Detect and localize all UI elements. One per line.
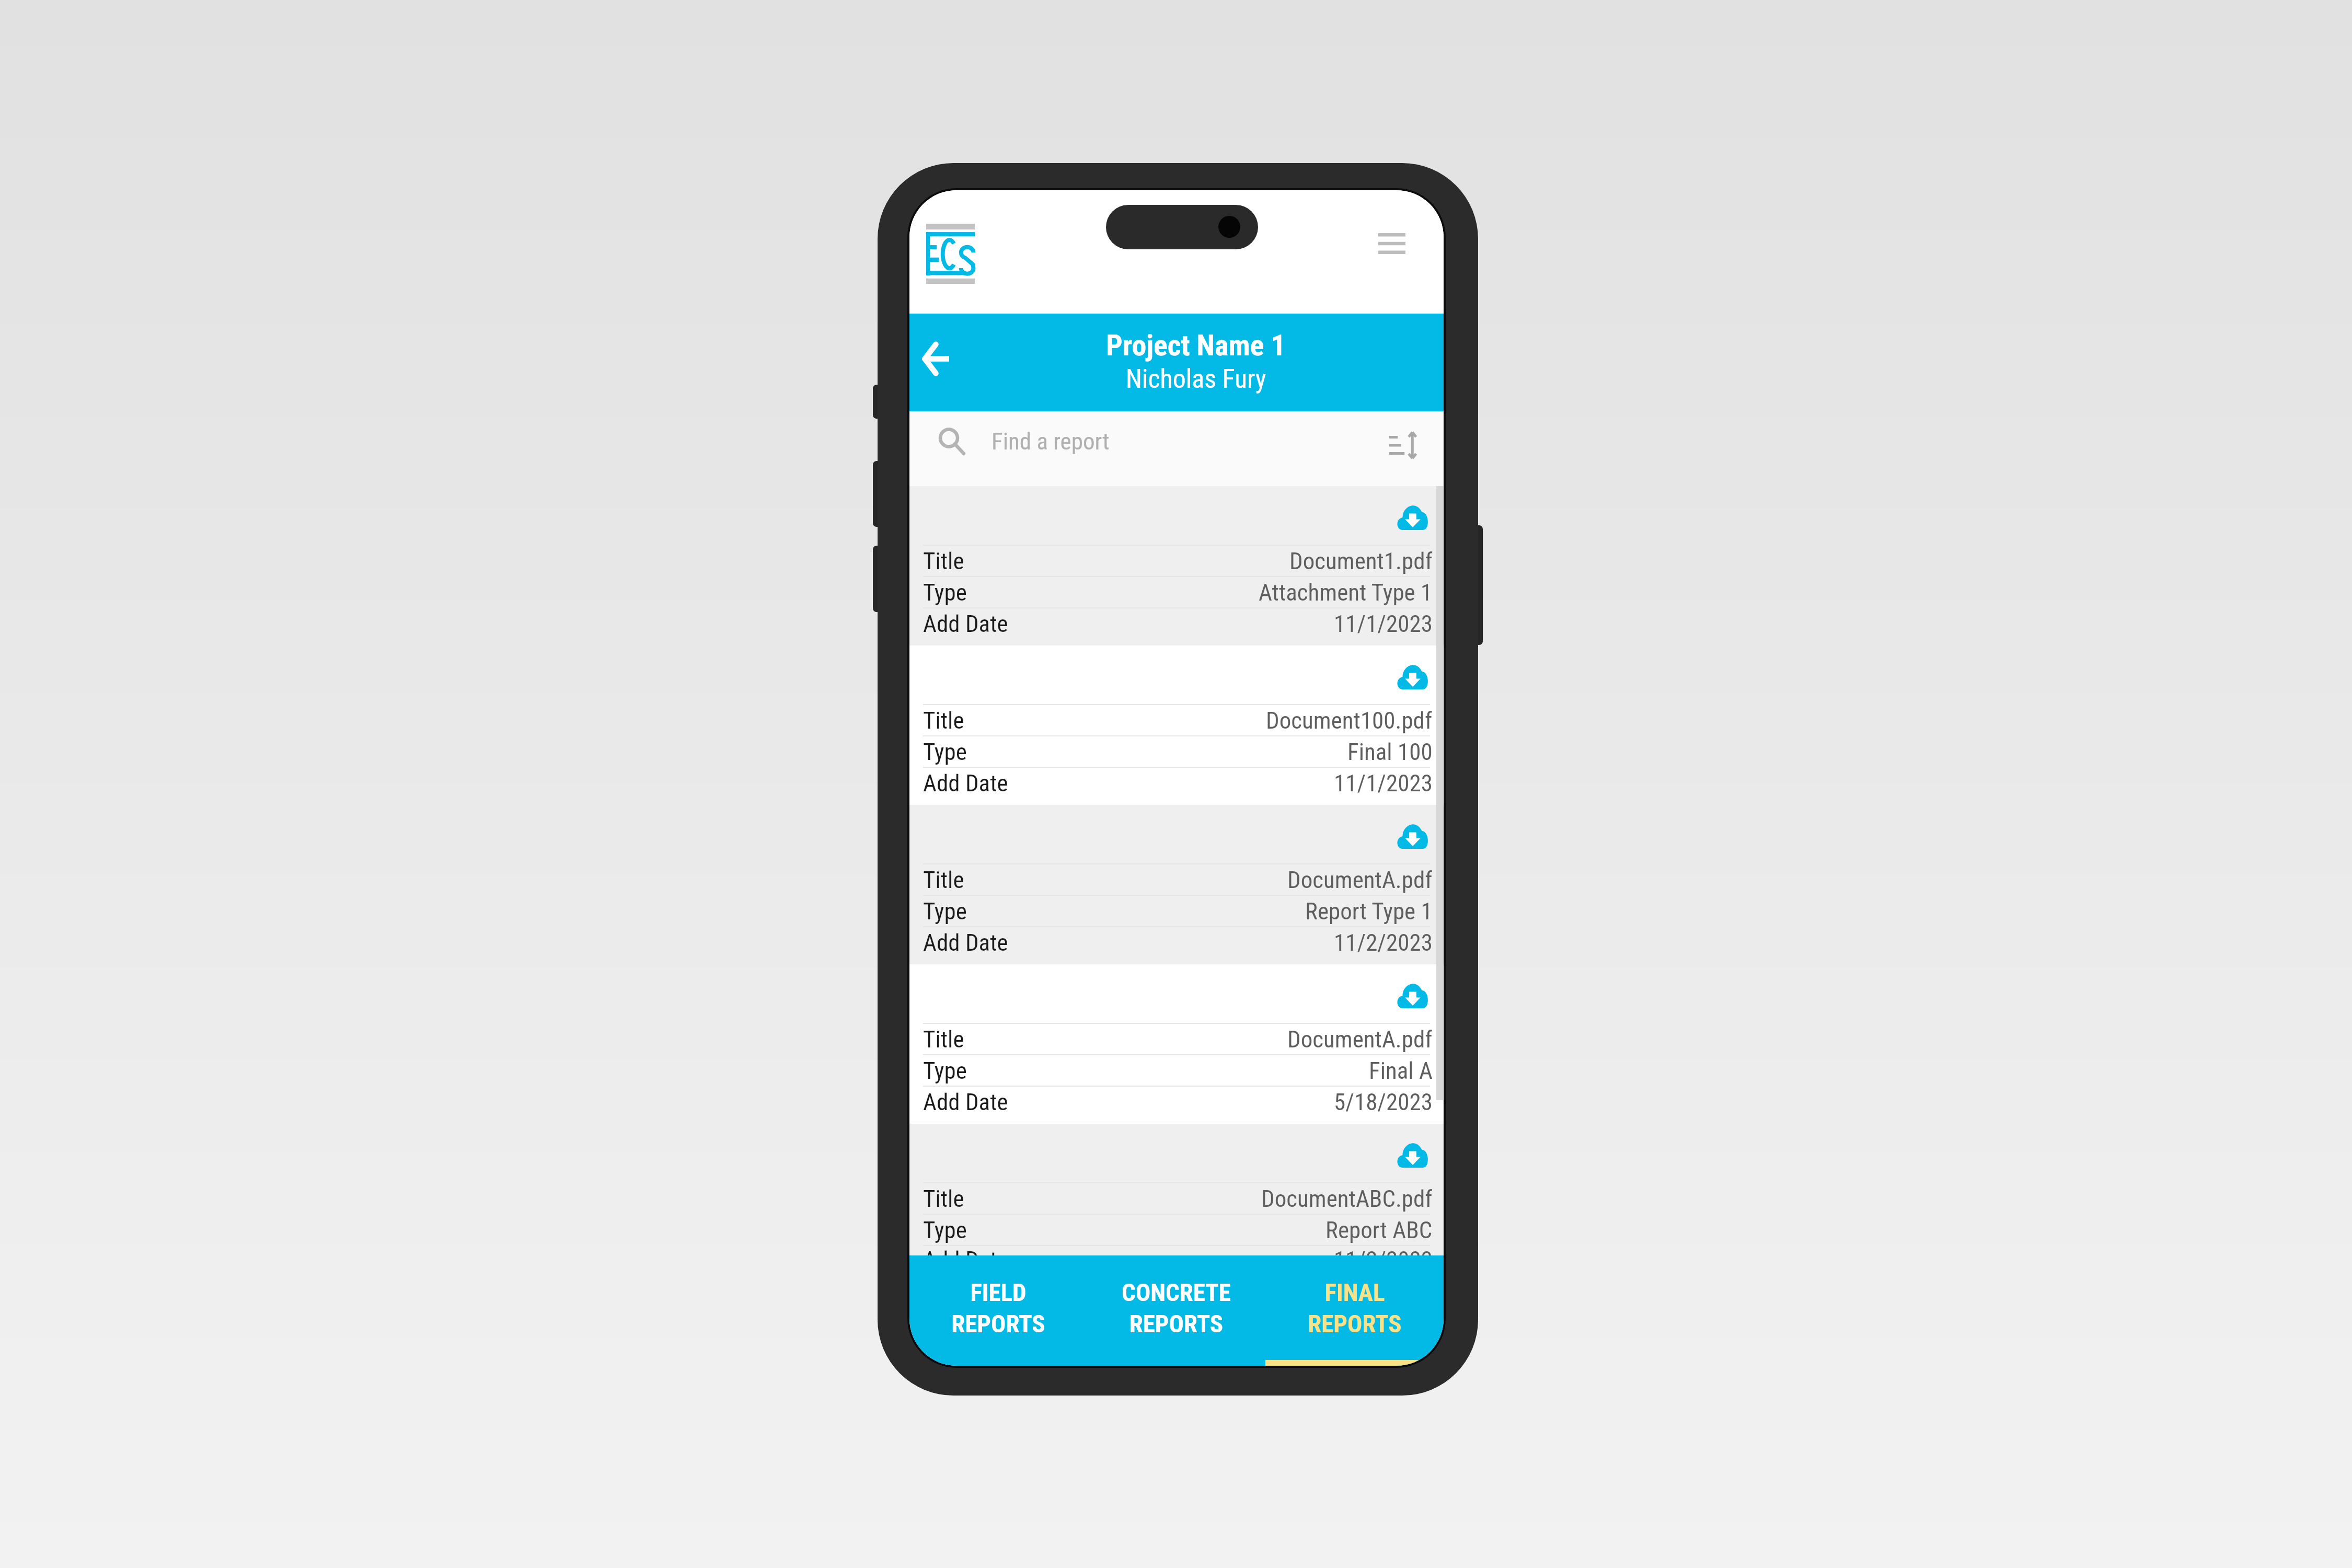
staticText: Title: [923, 1025, 964, 1053]
button[interactable]: Back: [909, 330, 962, 388]
staticText: Type: [923, 1216, 967, 1244]
button[interactable]: Download: [909, 805, 1444, 964]
staticText: Report Type 1: [1305, 897, 1433, 925]
staticText: Type: [923, 897, 967, 925]
button[interactable]: Download: [909, 486, 1444, 645]
staticText: Final A: [1369, 1057, 1433, 1085]
staticText: CONCRETE REPORTS: [1122, 1278, 1231, 1338]
staticText: Add Date: [923, 769, 1008, 797]
staticText: Title: [923, 1185, 964, 1213]
staticText: Project Name 1: [1106, 328, 1286, 363]
staticText: Add Date: [923, 1246, 1008, 1255]
staticText: DocumentA.pdf: [1287, 1025, 1433, 1053]
staticText: 5/18/2023: [1334, 1088, 1433, 1116]
staticText: Nicholas Fury: [1126, 364, 1266, 395]
staticText: Document100.pdf: [1266, 707, 1433, 734]
staticText: Attachment Type 1: [1259, 579, 1433, 606]
button[interactable]: Download: [1389, 497, 1436, 536]
staticText: Title: [923, 547, 964, 575]
staticText: 11/2/2023: [1334, 929, 1433, 956]
button[interactable]: Download: [909, 645, 1444, 805]
staticText: FINAL REPORTS: [1308, 1278, 1402, 1338]
staticText: 11/1/2023: [1334, 769, 1433, 797]
button[interactable]: Download: [1389, 815, 1436, 855]
staticText: Type: [923, 738, 967, 766]
button[interactable]: Download: [1389, 975, 1436, 1014]
staticText: Add Date: [923, 929, 1008, 956]
button[interactable]: Download: [909, 1124, 1444, 1255]
staticText: Add Date: [923, 1088, 1008, 1116]
staticText: Add Date: [923, 610, 1008, 638]
staticText: Type: [923, 1057, 967, 1085]
button[interactable]: Download: [1389, 1134, 1436, 1174]
staticText: 11/2/2023: [1334, 1246, 1433, 1255]
staticText: DocumentABC.pdf: [1261, 1185, 1433, 1213]
staticText: Final 100: [1347, 738, 1433, 766]
staticText: Report ABC: [1325, 1216, 1433, 1244]
staticText: Find a report: [991, 428, 1110, 455]
staticText: Type: [923, 579, 967, 606]
staticText: 11/1/2023: [1334, 610, 1433, 638]
button[interactable]: CONCRETE REPORTS: [1087, 1255, 1265, 1366]
staticText: Title: [923, 707, 964, 734]
button[interactable]: FINAL REPORTS: [1265, 1255, 1444, 1366]
button[interactable]: FIELD REPORTS: [909, 1255, 1087, 1366]
button[interactable]: Download: [1389, 656, 1436, 696]
staticText: FIELD REPORTS: [951, 1278, 1045, 1338]
button[interactable]: Download: [909, 964, 1444, 1124]
staticText: DocumentA.pdf: [1287, 866, 1433, 894]
staticText: Title: [923, 866, 964, 894]
button[interactable]: Menu: [1365, 216, 1419, 271]
button[interactable]: Sort: [1380, 422, 1427, 469]
staticText: Document1.pdf: [1289, 547, 1433, 575]
